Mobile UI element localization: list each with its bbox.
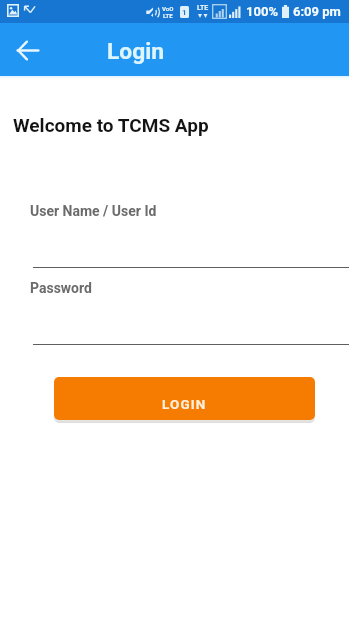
staticText: 6:09 pm: [293, 4, 341, 19]
staticText: 1: [182, 8, 187, 17]
button[interactable]: LOGIN: [54, 377, 315, 420]
button[interactable]: Back: [11, 33, 45, 67]
staticText: 100%: [246, 4, 278, 19]
staticText: LTE: [197, 4, 209, 12]
staticText: Welcome to TCMS App: [13, 114, 209, 136]
staticText: LOGIN: [162, 396, 207, 412]
staticText: Password: [30, 280, 92, 296]
staticText: LTE: [163, 12, 173, 19]
staticText: VoO: [162, 5, 174, 12]
staticText: Login: [107, 38, 165, 65]
staticText: User Name / User Id: [30, 203, 157, 219]
